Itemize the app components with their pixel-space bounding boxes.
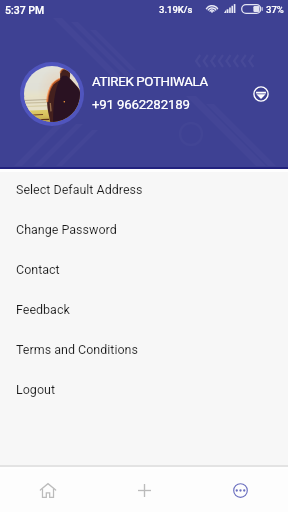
staticText: 3.19K/s xyxy=(159,4,193,15)
button[interactable]: Expand xyxy=(250,83,271,104)
staticText: 5:37 PM xyxy=(5,4,45,16)
button[interactable]: Add xyxy=(96,469,192,512)
button[interactable]: More xyxy=(192,469,288,512)
button[interactable]: Select Default Address xyxy=(0,169,288,209)
button[interactable]: Terms and Conditions xyxy=(0,329,288,369)
button[interactable]: Change Password xyxy=(0,209,288,249)
button[interactable]: Home xyxy=(0,469,96,512)
staticText: ATIREK POTHIWALA xyxy=(92,74,208,90)
staticText: +91 9662282189 xyxy=(92,97,190,113)
staticText: Contact xyxy=(16,262,60,277)
staticText: Select Default Address xyxy=(16,182,143,197)
staticText: Terms and Conditions xyxy=(16,342,138,357)
button[interactable]: Contact xyxy=(0,249,288,289)
button[interactable]: Feedback xyxy=(0,289,288,329)
staticText: Feedback xyxy=(16,302,70,317)
staticText: 37% xyxy=(266,4,284,15)
staticText: Logout xyxy=(16,382,55,397)
staticText: Change Password xyxy=(16,222,117,237)
button[interactable]: Logout xyxy=(0,369,288,409)
